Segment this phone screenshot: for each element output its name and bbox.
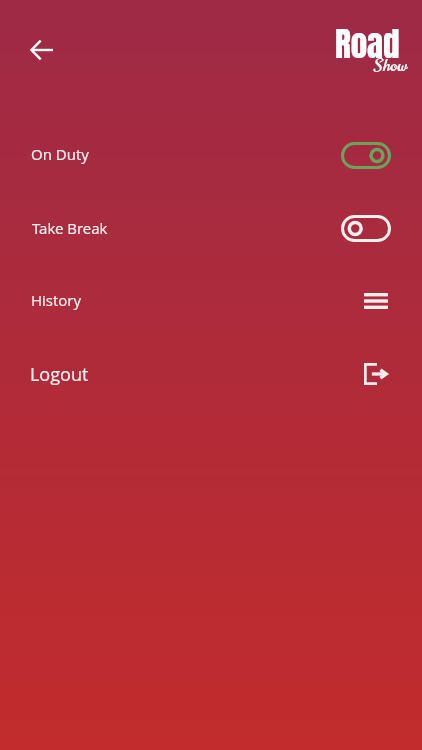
staticText: History	[31, 290, 82, 310]
button[interactable]: Back	[18, 32, 54, 68]
button[interactable]: History	[364, 291, 388, 311]
staticText: Take Break	[32, 218, 108, 238]
button[interactable]: Take Break, off	[341, 215, 391, 242]
button[interactable]: On Duty	[0, 119, 422, 191]
staticText: Logout	[30, 362, 89, 387]
staticText: Show	[374, 54, 407, 78]
button[interactable]: Take Break	[0, 192, 422, 264]
button[interactable]: Logout	[0, 338, 422, 410]
button[interactable]: Road Show	[320, 14, 420, 78]
button[interactable]: History	[0, 265, 422, 337]
staticText: On Duty	[31, 144, 89, 164]
button[interactable]: On Duty, on	[341, 142, 391, 169]
button[interactable]: Logout	[364, 363, 388, 385]
staticText: Road	[335, 19, 400, 69]
